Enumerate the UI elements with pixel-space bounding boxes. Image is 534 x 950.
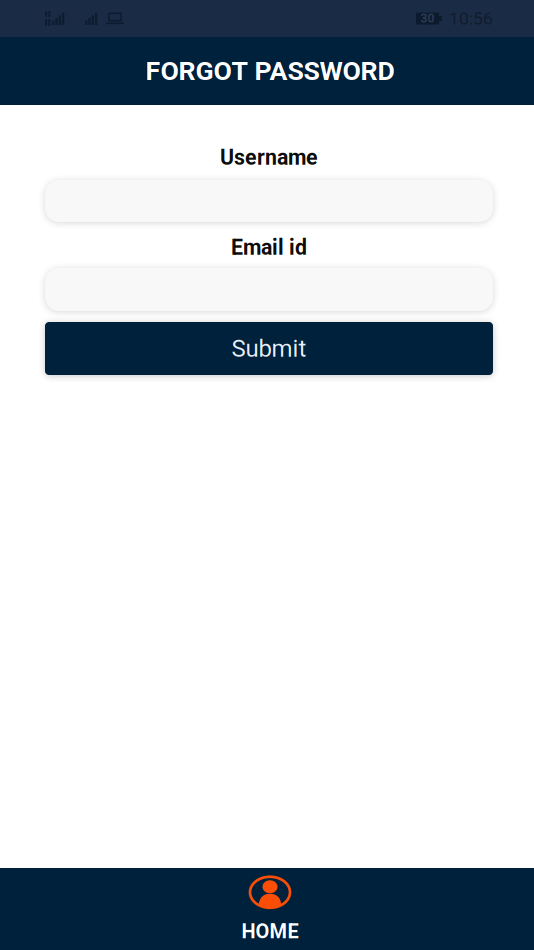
staticText: 10:56 — [449, 8, 493, 29]
staticText: FORGOT PASSWORD — [145, 55, 394, 87]
staticText: Email id — [231, 235, 307, 260]
button[interactable]: Submit — [45, 322, 493, 375]
staticText: Username — [220, 145, 318, 170]
staticText: 30 — [420, 11, 434, 26]
button[interactable]: Home tab — [0, 868, 534, 950]
staticText: HOME — [241, 920, 298, 943]
staticText: Submit — [231, 334, 306, 362]
